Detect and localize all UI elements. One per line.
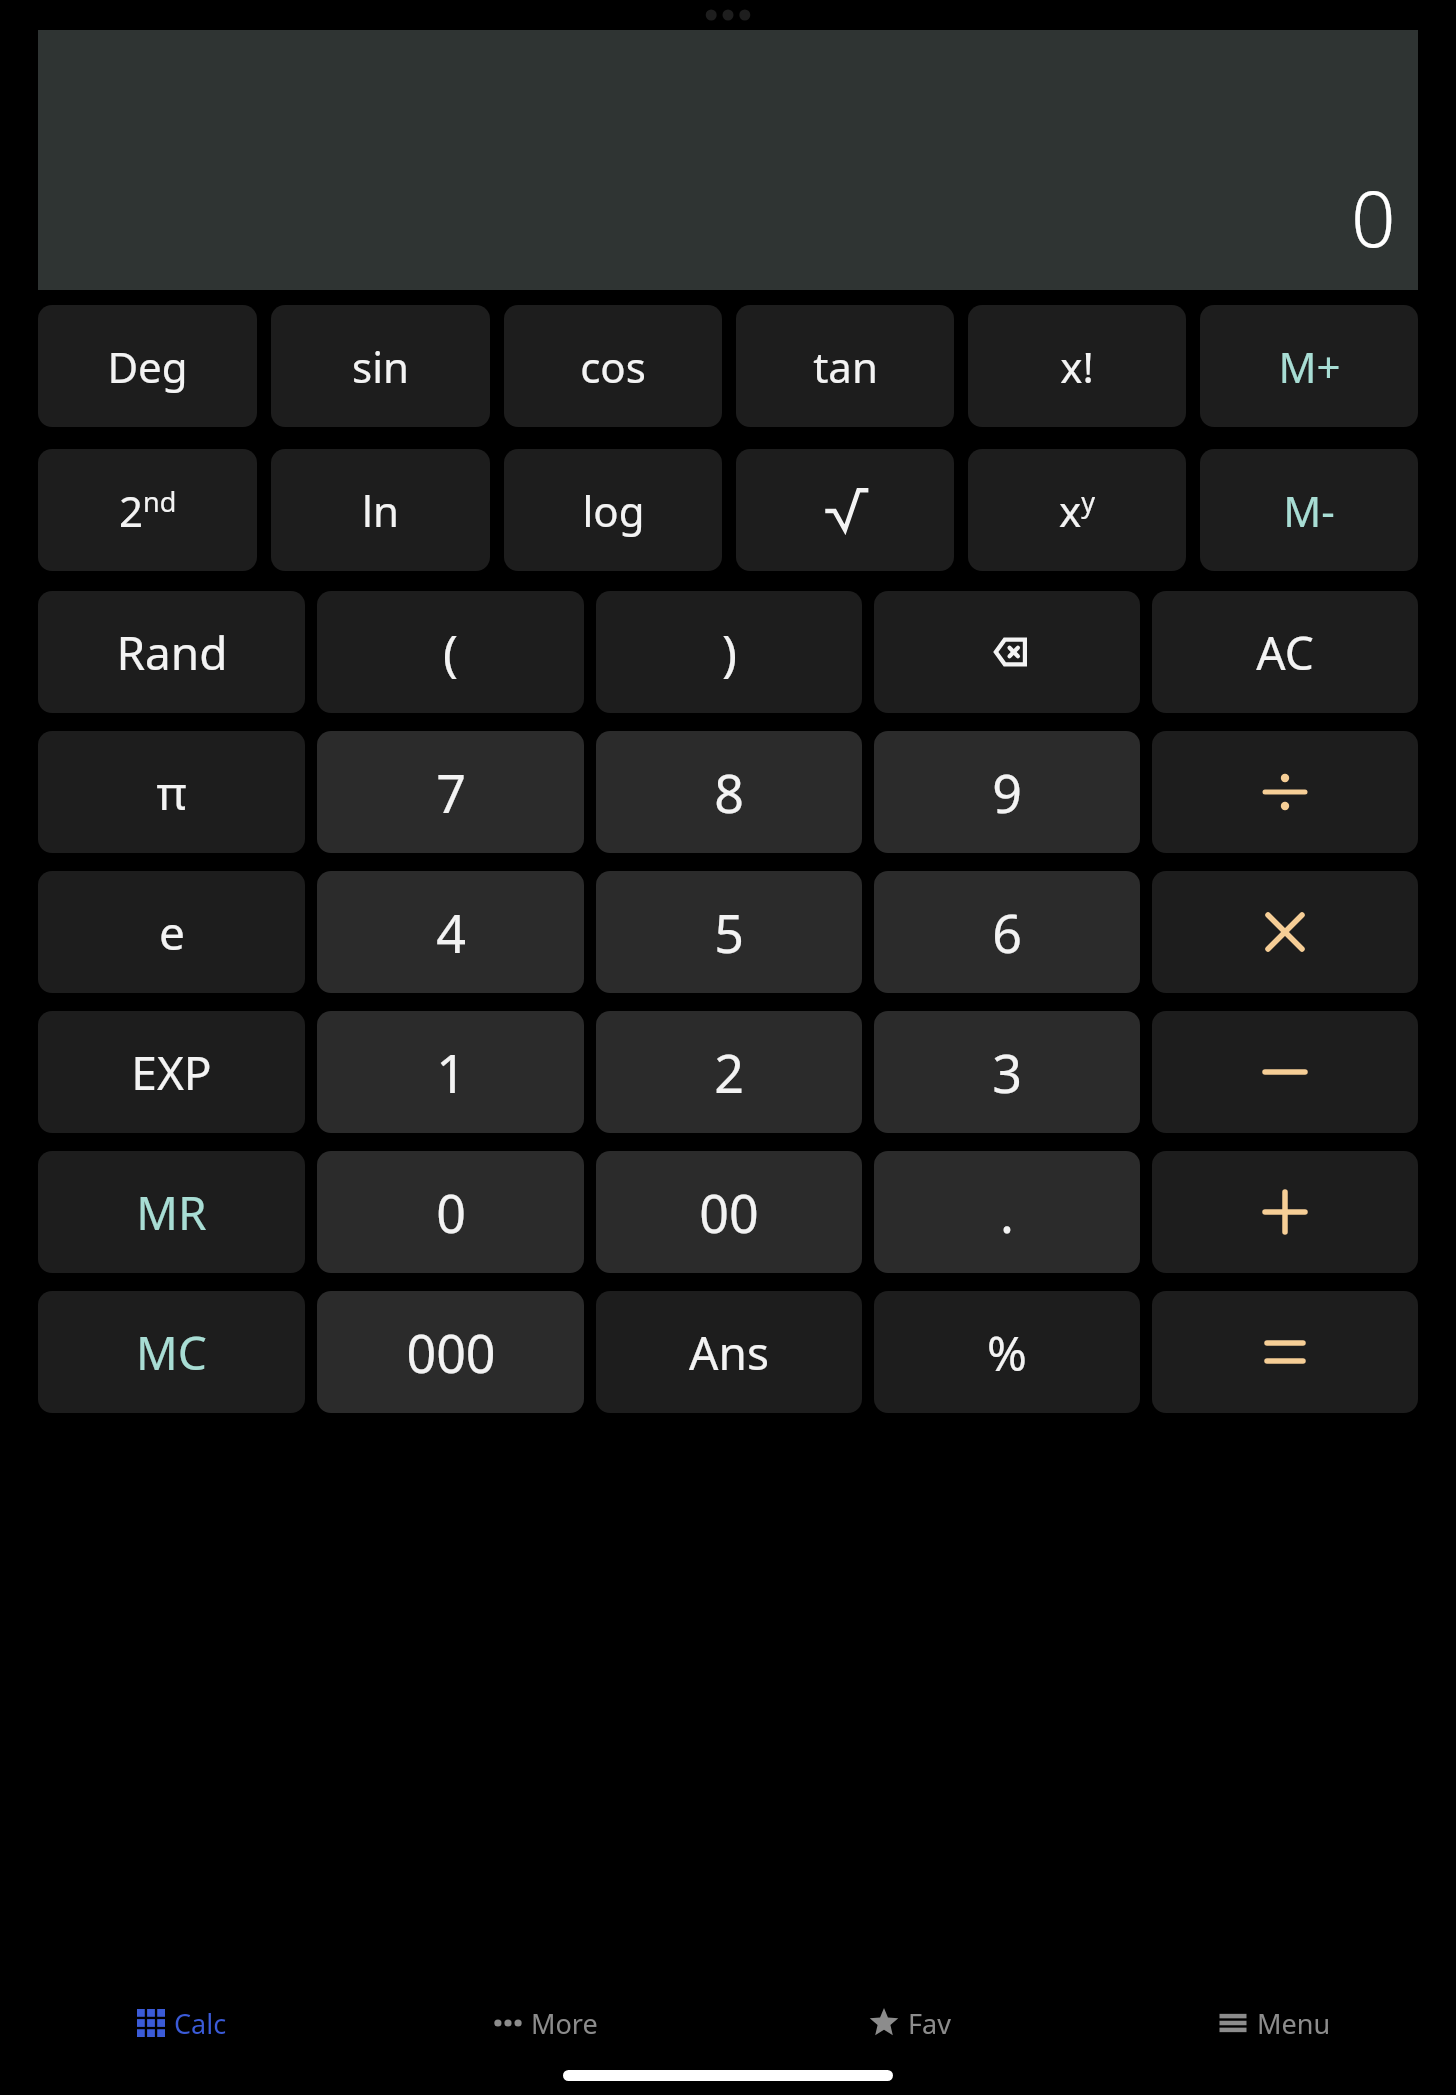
staticText: 000 [406,1317,496,1388]
staticText: e [159,901,185,964]
staticText: cos [580,338,646,395]
button[interactable]: tan [736,305,954,427]
staticText: More [531,2005,598,2042]
button[interactable]: ( [317,591,584,713]
button[interactable]: Equals [1152,1291,1418,1413]
staticText: tan [813,338,878,395]
button[interactable]: Ans [596,1291,862,1413]
button[interactable]: Rand [38,591,305,713]
button[interactable]: e [38,871,305,993]
staticText: M+ [1278,338,1341,395]
staticText: xy [1059,482,1095,539]
button[interactable]: Multiply [1152,871,1418,993]
staticText: AC [1256,621,1314,684]
button[interactable]: x! [968,305,1186,427]
staticText: ( [443,618,458,686]
button[interactable]: 00 [596,1151,862,1273]
button[interactable]: 1 [317,1011,584,1133]
staticText: 5 [714,897,744,968]
button[interactable]: ) [596,591,862,713]
staticText: 3 [992,1037,1022,1108]
button[interactable]: log [504,449,722,571]
staticText: MR [136,1181,207,1244]
staticText: MC [136,1321,207,1384]
staticText: 8 [714,757,744,828]
staticText: 6 [992,897,1022,968]
staticText: ) [722,618,737,686]
staticText: 4 [436,897,466,968]
button[interactable]: 4 [317,871,584,993]
button[interactable]: 9 [874,731,1140,853]
button[interactable]: 000 [317,1291,584,1413]
button[interactable]: 3 [874,1011,1140,1133]
staticText: 2 [714,1037,744,1108]
staticText: 9 [992,757,1022,828]
button[interactable]: Fav [728,1991,1092,2055]
button[interactable]: 7 [317,731,584,853]
button[interactable]: 6 [874,871,1140,993]
staticText: Rand [116,621,228,684]
staticText: ln [362,482,399,539]
staticText: M- [1283,482,1335,539]
staticText: 1 [436,1037,466,1108]
button[interactable]: Deg [38,305,257,427]
button[interactable]: . [874,1151,1140,1273]
staticText: 2nd [119,482,177,539]
button[interactable]: M+ [1200,305,1418,427]
staticText: π [156,761,187,824]
button[interactable]: 8 [596,731,862,853]
button[interactable]: sin [271,305,490,427]
button[interactable]: AC [1152,591,1418,713]
button[interactable]: MC [38,1291,305,1413]
staticText: 00 [699,1177,759,1248]
button[interactable]: Square root [736,449,954,571]
staticText: 0 [1351,164,1396,270]
staticText: 7 [436,757,466,828]
staticText: Fav [908,2005,951,2042]
button[interactable]: Calc [0,1991,364,2055]
button[interactable]: xy [968,449,1186,571]
button[interactable]: cos [504,305,722,427]
staticText: % [987,1320,1027,1385]
button[interactable]: π [38,731,305,853]
button[interactable]: 5 [596,871,862,993]
staticText: . [1000,1177,1014,1248]
button[interactable]: MR [38,1151,305,1273]
staticText: sin [352,338,409,395]
button[interactable]: More [364,1991,728,2055]
button[interactable]: ln [271,449,490,571]
staticText: Ans [689,1321,769,1384]
button[interactable]: 2 [596,1011,862,1133]
button[interactable]: Subtract [1152,1011,1418,1133]
button[interactable]: M- [1200,449,1418,571]
staticText: EXP [131,1041,212,1104]
staticText: Calc [174,2005,227,2042]
button[interactable]: % [874,1291,1140,1413]
button[interactable]: Divide [1152,731,1418,853]
button[interactable]: Add [1152,1151,1418,1273]
button[interactable]: Backspace [874,591,1140,713]
button[interactable]: EXP [38,1011,305,1133]
staticText: x! [1060,338,1094,395]
staticText: log [582,482,645,539]
button[interactable]: 0 [317,1151,584,1273]
staticText: 0 [436,1177,466,1248]
staticText: Deg [107,338,188,395]
button[interactable]: Menu [1092,1991,1456,2055]
staticText: Menu [1257,2005,1331,2042]
button[interactable]: 2nd [38,449,257,571]
